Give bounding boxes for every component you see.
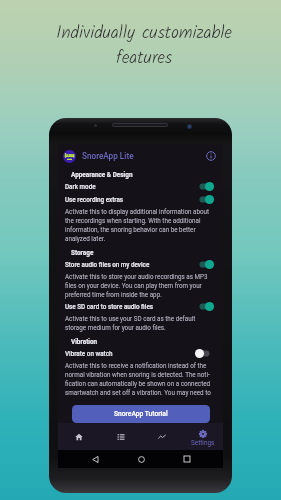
staticText: Storage <box>71 249 94 257</box>
button[interactable]: Info <box>204 149 218 163</box>
staticText: Activate this to use your SD card as the… <box>65 315 213 332</box>
staticText: SnoreApp Lite <box>82 151 134 161</box>
button[interactable]: Use SD card to store audio files <box>58 300 223 333</box>
button[interactable]: Use recording extras <box>58 193 223 244</box>
button[interactable]: Store audio files on my device <box>58 258 223 300</box>
button[interactable]: Recordings <box>100 423 141 450</box>
button[interactable]: Vibrate on watch <box>58 347 223 398</box>
staticText: Dark mode <box>65 183 195 190</box>
button[interactable]: Settings <box>182 423 223 450</box>
staticText: Use SD card to store audio files <box>65 303 195 310</box>
button[interactable]: Toggle on <box>195 180 214 193</box>
button[interactable]: Toggle on <box>195 193 214 206</box>
staticText: Appearance & Design <box>71 171 133 179</box>
staticText: Activate this to display additional info… <box>65 208 213 243</box>
button[interactable]: Statistics <box>141 423 182 450</box>
staticText: Use recording extras <box>65 196 195 203</box>
button[interactable]: Home <box>58 423 100 450</box>
staticText: Vibrate on watch <box>65 350 195 357</box>
staticText: Store audio files on my device <box>65 261 195 268</box>
staticText: Individually customizable features <box>56 19 232 72</box>
button[interactable]: Toggle on <box>195 300 214 313</box>
staticText: Vibration <box>71 338 98 346</box>
staticText: Activate this to receive a notification … <box>65 362 213 397</box>
staticText: Activate this to store your audio record… <box>65 273 213 299</box>
staticText: Settings <box>191 439 215 447</box>
button[interactable]: Toggle on <box>195 258 214 271</box>
button[interactable]: SnoreApp Tutorial <box>72 405 210 423</box>
button[interactable]: Toggle off <box>195 347 214 360</box>
button[interactable]: Dark mode <box>58 180 223 193</box>
staticText: SnoreApp Tutorial <box>114 410 168 418</box>
